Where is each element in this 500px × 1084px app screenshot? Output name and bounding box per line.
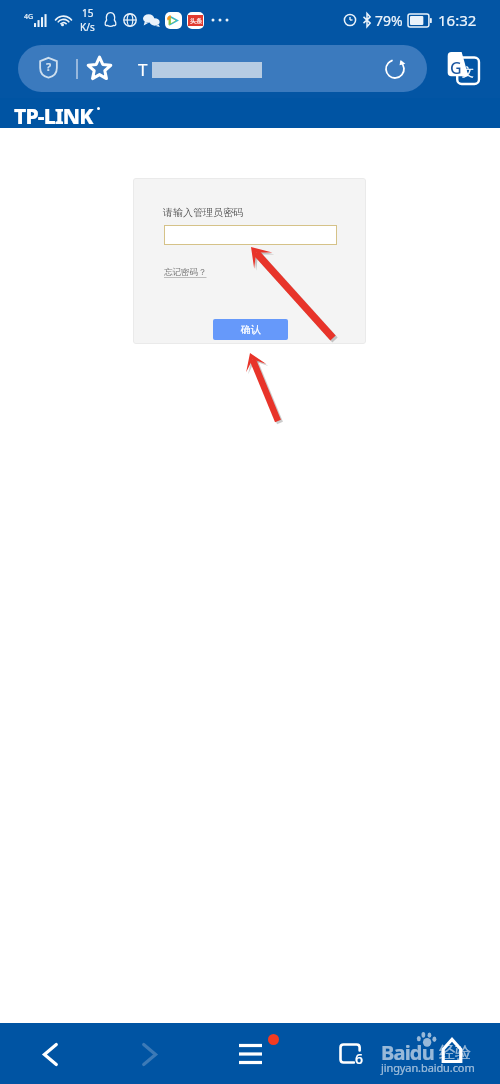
staticText: 6	[355, 1049, 364, 1068]
button[interactable]: Translate page	[446, 51, 480, 85]
button[interactable]: Security info	[39, 57, 58, 78]
button[interactable]: Tabs	[315, 1029, 387, 1079]
staticText: 请输入管理员密码	[163, 206, 243, 219]
staticText: K/s	[80, 20, 95, 34]
staticText: 确认	[241, 323, 261, 336]
button[interactable]: Bookmark	[86, 55, 113, 82]
staticText: 16:32	[438, 10, 477, 30]
staticText: jingyan.baidu.com	[381, 1060, 475, 1075]
staticText: 经验	[439, 1043, 471, 1063]
staticText: 79%	[375, 11, 403, 30]
staticText: 头条	[190, 17, 202, 25]
button[interactable]: Back	[14, 1029, 86, 1079]
staticText: 15	[82, 6, 94, 20]
button[interactable]: 忘记密码？	[164, 267, 207, 278]
button[interactable]: Administrator password field	[164, 225, 337, 245]
staticText: TP-LINK	[14, 102, 93, 131]
staticText: 文	[462, 64, 474, 79]
staticText: G	[450, 57, 462, 79]
staticText: T	[138, 58, 148, 81]
staticText: Baidu	[381, 1039, 434, 1066]
button[interactable]: Security info	[18, 45, 427, 92]
button[interactable]: Menu	[215, 1029, 287, 1079]
staticText: ?	[46, 59, 52, 74]
button[interactable]: Refresh	[384, 58, 406, 80]
staticText: 4G	[24, 12, 34, 22]
button[interactable]: Forward	[114, 1029, 186, 1079]
button[interactable]: 确认	[213, 319, 288, 340]
